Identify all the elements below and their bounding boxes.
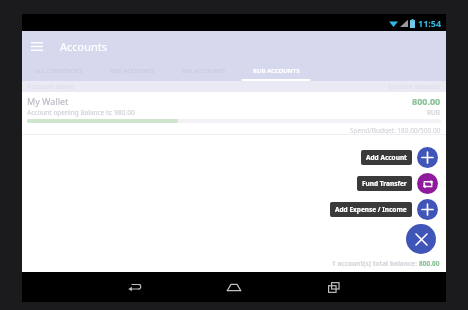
staticText: RUB bbox=[427, 108, 441, 117]
other: Add Account bbox=[417, 147, 438, 168]
button[interactable]: Fund Transfer bbox=[357, 173, 438, 194]
button[interactable]: Open navigation drawer bbox=[22, 31, 52, 61]
staticText: 1 account(s) total balance: bbox=[332, 259, 419, 268]
button[interactable]: Back bbox=[104, 272, 164, 302]
staticText: 800.00 bbox=[412, 95, 441, 107]
button[interactable]: Home bbox=[204, 272, 264, 302]
button[interactable]: Add Expense / Income bbox=[330, 199, 438, 220]
staticText: 11:54 bbox=[418, 17, 442, 29]
button[interactable]: RUB ACCOUNTS bbox=[240, 61, 312, 81]
staticText: Account Name bbox=[27, 82, 75, 91]
button[interactable]: My Wallet bbox=[22, 92, 446, 134]
staticText: Account opening Balance is: 980.00 bbox=[27, 108, 135, 117]
button[interactable]: Recent apps bbox=[304, 272, 364, 302]
staticText: RUB ACCOUNTS bbox=[253, 67, 300, 75]
staticText: Spend/Budget: 180.00/500.00 bbox=[350, 126, 441, 134]
staticText: 800.00 bbox=[419, 259, 440, 268]
staticText: ALL CURRENCIES bbox=[35, 67, 83, 75]
other: Add Expense / Income bbox=[417, 199, 438, 220]
button[interactable]: Close menu bbox=[406, 224, 436, 254]
staticText: Add Account bbox=[366, 153, 407, 162]
staticText: My Wallet bbox=[27, 95, 69, 107]
button[interactable]: Add Account bbox=[361, 147, 438, 168]
other: Fund Transfer bbox=[417, 173, 438, 194]
staticText: INR ACCOUNTS bbox=[182, 67, 226, 75]
staticText: Add Expense / Income bbox=[335, 205, 407, 214]
staticText: GBP ACCOUNTS bbox=[110, 67, 155, 75]
staticText: Current Balance bbox=[388, 82, 441, 91]
staticText: Accounts bbox=[60, 39, 108, 54]
staticText: Fund Transfer bbox=[362, 179, 407, 188]
